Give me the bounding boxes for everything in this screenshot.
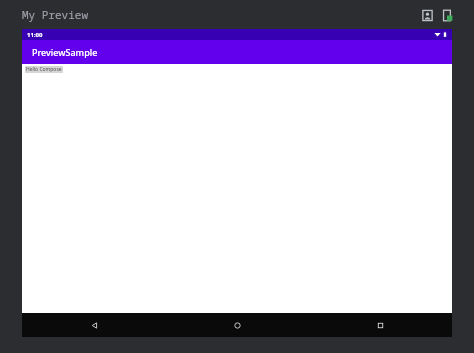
button[interactable]: Home — [166, 313, 309, 337]
button[interactable]: Hello Compose — [26, 66, 62, 73]
button[interactable]: Recent apps — [309, 313, 452, 337]
staticText: Hello Compose — [26, 66, 62, 73]
button[interactable]: Run on device — [440, 8, 454, 22]
button[interactable]: PreviewSample — [22, 40, 452, 64]
staticText: 11:00 — [27, 31, 43, 39]
staticText: My Preview — [22, 7, 88, 22]
button[interactable]: Back — [22, 313, 166, 337]
staticText: PreviewSample — [32, 46, 98, 58]
button[interactable]: Select device — [420, 8, 434, 22]
